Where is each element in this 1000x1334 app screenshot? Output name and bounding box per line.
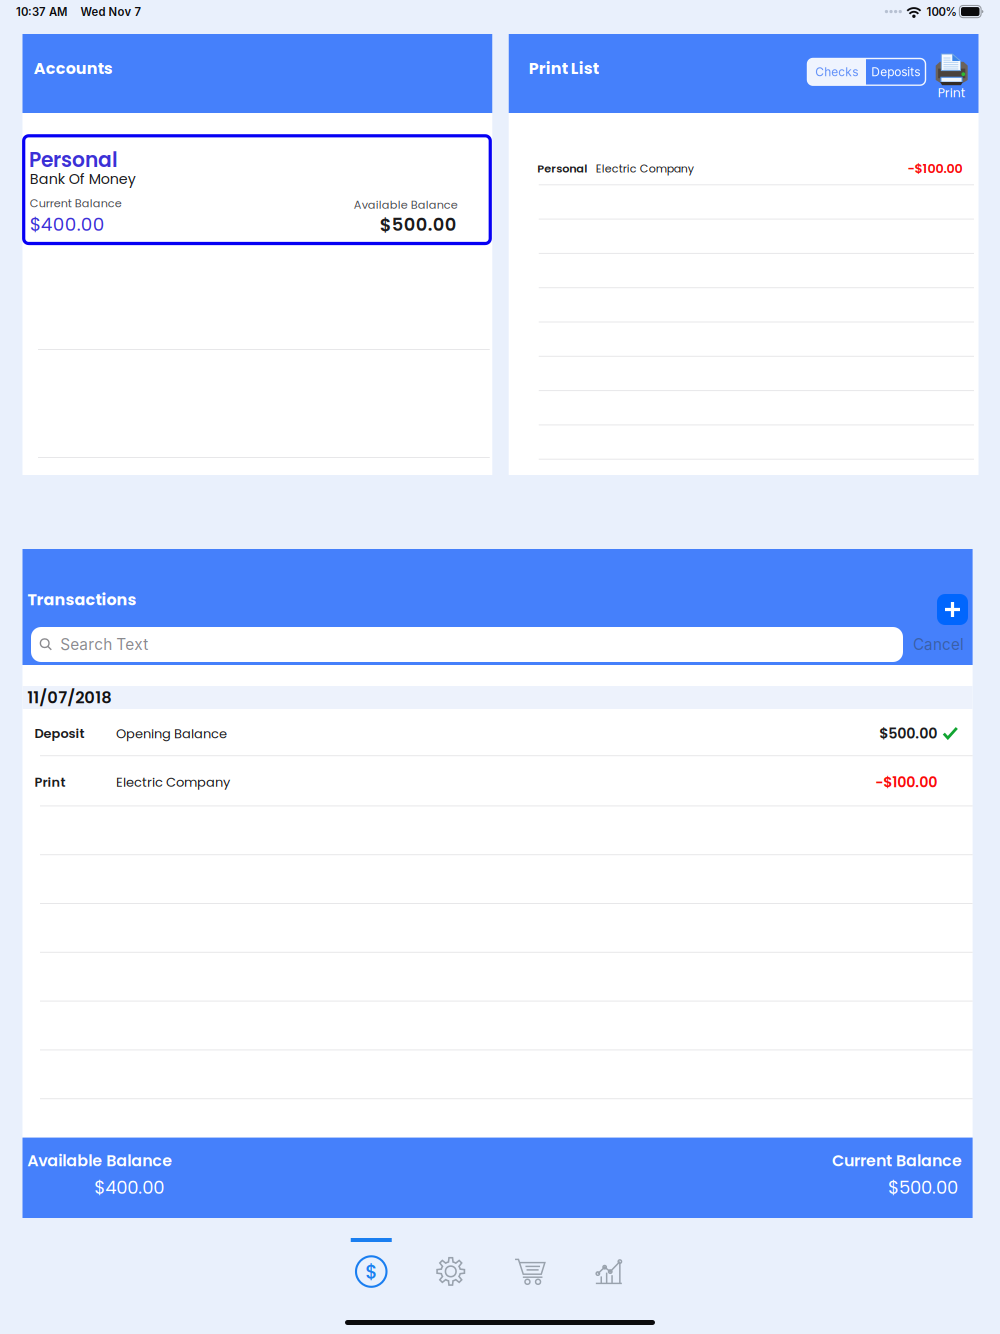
staticText: Wed Nov 7 [80,5,141,19]
staticText: Print [34,773,65,791]
staticText: Current Balance [30,195,122,211]
staticText: 100% [926,5,956,19]
button[interactable]: Print [935,34,968,102]
staticText: -$100.00 [875,772,937,792]
button[interactable]: Print [22,756,973,805]
button[interactable]: Shop [491,1238,570,1296]
button[interactable]: Accounts [332,1238,411,1296]
staticText: Deposit [34,725,84,743]
button[interactable]: Deposit [22,709,973,755]
staticText: Accounts [34,57,113,79]
button[interactable]: Personal [24,136,490,243]
staticText: Electric Company [596,161,694,176]
button[interactable]: Add transaction [937,594,968,625]
staticText: $400.00 [30,211,105,237]
staticText: $400.00 [94,1175,164,1200]
staticText: Available Balance [27,1150,172,1172]
staticText: Transactions [27,588,136,611]
staticText: Bank Of Money [30,169,136,189]
staticText: Print List [529,57,599,79]
staticText: $500.00 [879,724,937,744]
staticText: $500.00 [380,212,457,237]
staticText: Electric Company [116,773,230,791]
staticText: Cancel [913,635,964,654]
button[interactable]: Cancel [913,635,964,654]
staticText: Search Text [60,635,148,654]
button[interactable]: Reports [570,1238,648,1296]
button[interactable]: Checks [807,58,866,85]
button[interactable]: Search Text [31,627,903,662]
button[interactable]: Settings [411,1238,491,1296]
staticText: $500.00 [888,1175,958,1200]
staticText: Personal [537,161,587,176]
button[interactable]: Personal [509,150,979,184]
button[interactable]: Deposits [866,58,925,85]
staticText: Available Balance [354,197,458,213]
staticText: Opening Balance [116,724,227,743]
staticText: Deposits [871,65,920,79]
staticText: Checks [815,65,858,79]
staticText: -$100.00 [907,160,962,177]
staticText: Current Balance [832,1150,962,1172]
staticText: 11/07/2018 [27,686,111,709]
staticText: Personal [29,146,118,174]
staticText: $ [365,1258,377,1285]
staticText: Print [938,84,966,102]
staticText: 10:37 AM [16,5,67,19]
